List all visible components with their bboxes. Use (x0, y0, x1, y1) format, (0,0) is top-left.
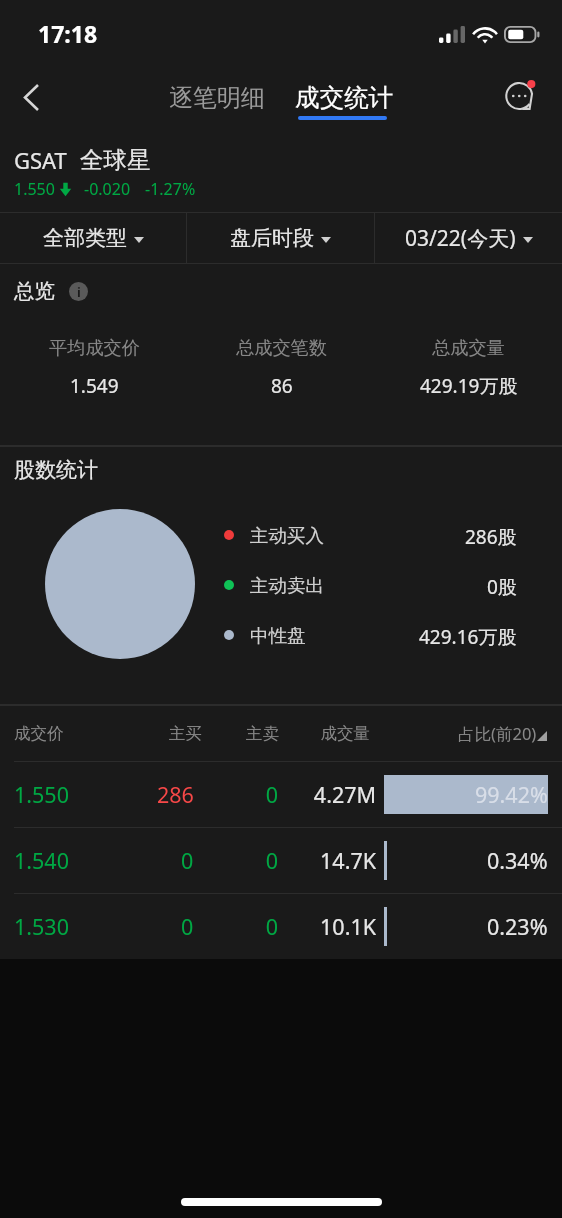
staticText: 逐笔明细 (169, 83, 265, 113)
staticText: 平均成交价 (49, 336, 140, 359)
staticText: 成交量 (279, 723, 370, 744)
staticText: -1.27% (145, 178, 196, 200)
staticText: 1.550 (14, 178, 55, 200)
staticText: 1.550 (14, 780, 69, 809)
staticText: 主卖 (202, 723, 279, 744)
staticText: GSAT (14, 145, 67, 175)
button[interactable]: 成交统计 (287, 74, 401, 121)
staticText: 主动卖出 (250, 574, 324, 596)
button[interactable]: Back (0, 62, 62, 133)
staticText: 0 (181, 912, 194, 941)
button[interactable]: 全部类型 (0, 212, 186, 264)
staticText: 0 (194, 846, 278, 875)
staticText: -0.020 (84, 178, 131, 200)
staticText: 主买 (169, 723, 202, 744)
staticText: 286 (157, 780, 194, 809)
button[interactable]: 逐笔明细 (161, 75, 273, 121)
staticText: 总览 (14, 278, 55, 304)
staticText: 0.34% (487, 846, 548, 875)
staticText: 429.16万股 (419, 624, 517, 646)
staticText: 全球星 (80, 145, 151, 175)
staticText: 286股 (465, 524, 517, 546)
button[interactable]: 1.530 (0, 894, 562, 959)
button[interactable]: 1.550 (0, 762, 562, 827)
staticText: 1.530 (14, 912, 69, 941)
staticText: 盘后时段 (230, 225, 314, 251)
button[interactable]: 1.540 (0, 828, 562, 893)
staticText: 0 (194, 912, 278, 941)
button[interactable]: 03/22(今天) (375, 212, 562, 264)
button[interactable]: Info (69, 282, 88, 301)
staticText: 成交统计 (295, 82, 393, 113)
staticText: 主动买入 (250, 524, 324, 546)
staticText: 股数统计 (14, 457, 98, 483)
button[interactable]: 盘后时段 (187, 212, 374, 264)
staticText: 0股 (487, 574, 517, 596)
staticText: 0.23% (487, 912, 548, 941)
staticText: 429.19万股 (420, 373, 518, 399)
staticText: 全部类型 (43, 225, 127, 251)
staticText: 中性盘 (250, 624, 306, 646)
staticText: 占比(前20) (458, 722, 537, 745)
staticText: 4.27M (278, 780, 376, 809)
staticText: 总成交量 (432, 336, 505, 359)
staticText: 17:18 (38, 18, 98, 49)
staticText: 14.7K (278, 846, 376, 875)
staticText: 1.540 (14, 846, 69, 875)
staticText: 0 (181, 846, 194, 875)
staticText: 03/22(今天) (405, 224, 516, 253)
staticText: 总成交笔数 (236, 336, 327, 359)
staticText: 99.42% (475, 780, 548, 809)
staticText: i (77, 283, 81, 301)
staticText: 10.1K (278, 912, 376, 941)
staticText: 0 (194, 780, 278, 809)
button[interactable]: Messages (496, 73, 546, 123)
staticText: 86 (271, 373, 293, 399)
staticText: 1.549 (70, 373, 119, 399)
staticText: 成交价 (14, 723, 64, 744)
